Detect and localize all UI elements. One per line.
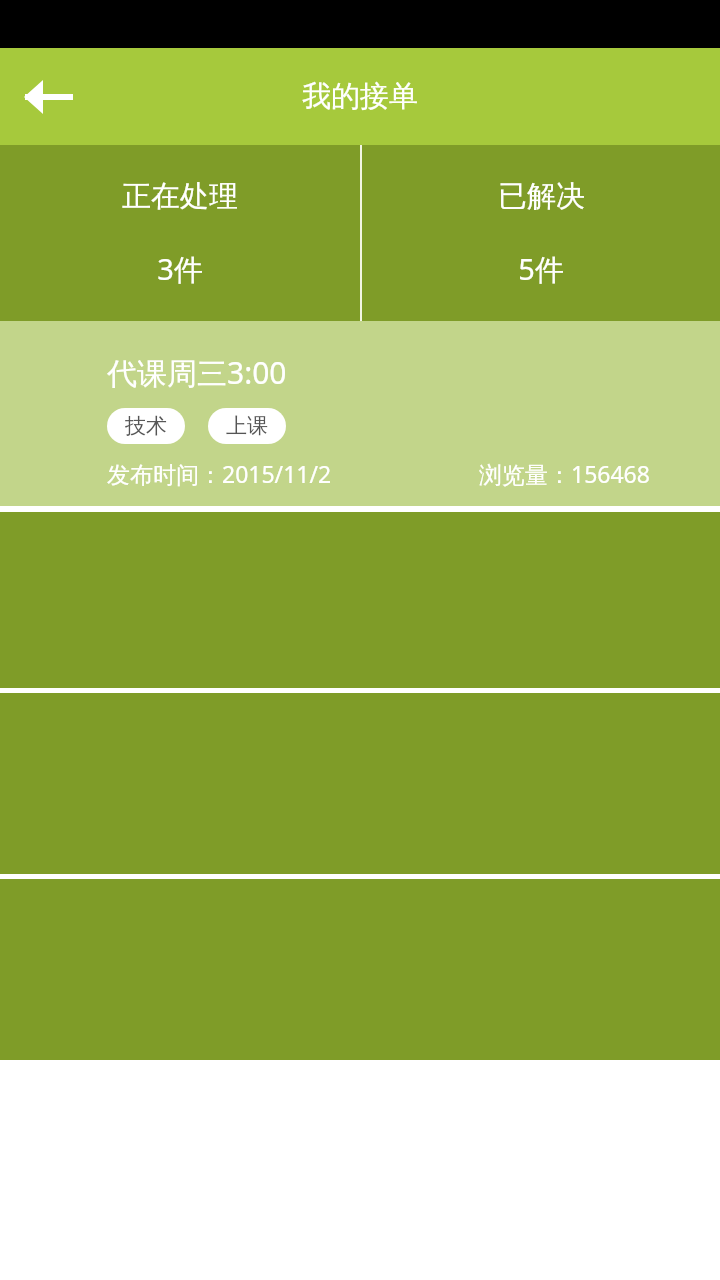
button[interactable]: Back <box>22 71 74 123</box>
staticText: 发布时间：2015/11/2 <box>107 458 332 489</box>
staticText: 3件 <box>157 249 203 289</box>
staticText: 正在处理 <box>122 178 238 215</box>
staticText: 上课 <box>226 413 268 439</box>
staticText: 代课周三3:00 <box>107 352 287 393</box>
staticText: 我的接单 <box>302 78 418 115</box>
staticText: 技术 <box>125 413 167 439</box>
button[interactable]: 已解决 <box>362 145 720 321</box>
staticText: 浏览量：156468 <box>479 458 650 489</box>
button[interactable]: 代课周三3:00 <box>0 321 720 506</box>
staticText: 已解决 <box>498 178 585 215</box>
button[interactable]: 上课 <box>208 408 286 444</box>
button[interactable]: 技术 <box>107 408 185 444</box>
staticText: 5件 <box>518 249 564 289</box>
button[interactable]: 正在处理 <box>0 145 360 321</box>
